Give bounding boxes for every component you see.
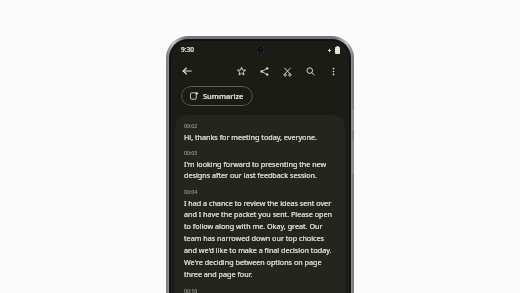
staticText: 9:30 [181,45,194,54]
button[interactable]: Summarize [181,86,253,106]
staticText: Hi, thanks for meeting today, everyone. [184,132,317,142]
staticText: 00:04 [184,188,198,195]
staticText: 00:10 [184,287,198,293]
staticText: 00:02 [184,122,198,129]
button[interactable]: More options [325,63,341,79]
button[interactable]: Hi, thanks for meeting today, everyone. [184,132,336,142]
staticText: I'm looking forward to presenting the ne… [184,159,336,181]
button[interactable]: Search [302,63,318,79]
staticText: I had a chance to review the ideas sent … [184,198,336,280]
button[interactable]: Share [256,63,272,79]
staticText: Summarize [203,91,244,101]
button[interactable]: I had a chance to review the ideas sent … [184,198,336,280]
button[interactable]: Back [179,63,195,79]
button[interactable]: Favorite [233,63,249,79]
button[interactable]: I'm looking forward to presenting the ne… [184,159,336,181]
button[interactable]: Cut [279,63,295,79]
staticText: 00:03 [184,149,198,156]
